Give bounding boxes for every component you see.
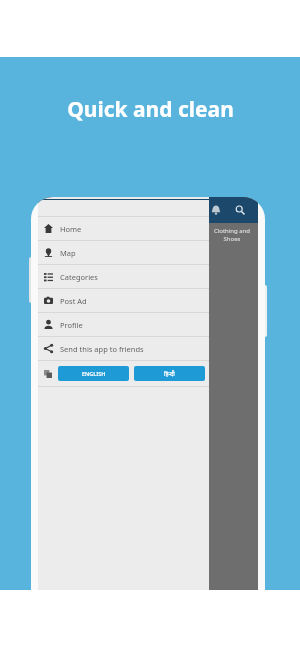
staticText: ENGLISH xyxy=(82,370,106,377)
staticText: Send this app to friends xyxy=(60,344,144,354)
staticText: Home xyxy=(60,224,82,234)
button[interactable]: ENGLISH xyxy=(58,366,129,381)
staticText: Map xyxy=(60,248,76,258)
staticText: Categories xyxy=(60,272,98,282)
staticText: Post Ad xyxy=(60,296,87,306)
staticText: Profile xyxy=(60,320,83,330)
button[interactable]: Send this app to friends xyxy=(38,337,209,360)
staticText: Quick and clean xyxy=(67,95,234,124)
button[interactable]: Categories xyxy=(38,265,209,288)
button[interactable]: Post Ad xyxy=(38,289,209,312)
button[interactable]: Profile xyxy=(38,313,209,336)
button[interactable]: Search xyxy=(230,200,250,220)
staticText: Clothing and Shoes xyxy=(208,227,256,243)
button[interactable]: Home xyxy=(38,217,209,240)
staticText: हिन्दी xyxy=(164,370,175,377)
button[interactable]: हिन्दी xyxy=(134,366,205,381)
button[interactable]: Map xyxy=(38,241,209,264)
button[interactable]: Notifications xyxy=(206,200,226,220)
